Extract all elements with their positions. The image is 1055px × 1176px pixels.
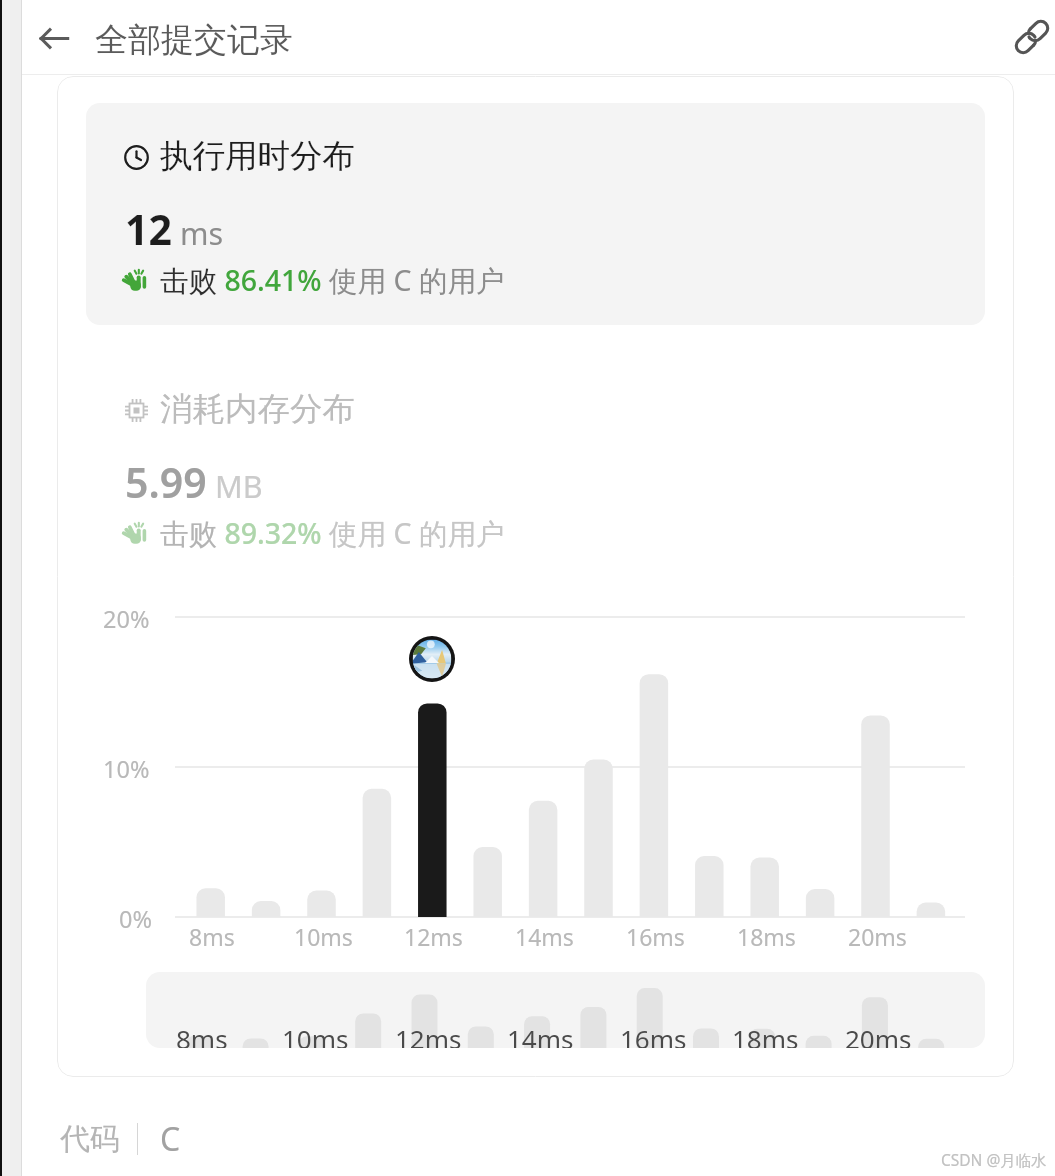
staticText: CSDN @月临水	[941, 1149, 1047, 1170]
button[interactable]: 消耗内存分布	[86, 371, 985, 566]
staticText: 0%	[119, 903, 152, 935]
staticText: 全部提交记录	[95, 19, 293, 61]
staticText: 消耗内存分布	[160, 389, 355, 430]
staticText: 10ms	[282, 1021, 349, 1048]
staticText: 代码	[60, 1120, 120, 1158]
staticText: 18ms	[732, 1021, 799, 1048]
button[interactable]: Copy link	[1008, 13, 1055, 61]
button[interactable]: 执行用时分布	[86, 103, 985, 325]
staticText: 5.99	[125, 454, 207, 510]
staticText: 20ms	[845, 1021, 912, 1048]
staticText: 8ms	[176, 1021, 228, 1048]
staticText: MB	[215, 465, 263, 507]
button[interactable]: Back	[30, 13, 78, 61]
staticText: 14ms	[515, 921, 574, 952]
staticText: 12ms	[395, 1021, 462, 1048]
staticText: 10%	[103, 753, 150, 785]
staticText: 击败 89.32% 使用 C 的用户	[160, 514, 505, 553]
staticText: ms	[180, 212, 224, 254]
button[interactable]: 代码	[60, 1117, 181, 1161]
staticText: 16ms	[626, 921, 685, 952]
staticText: C	[160, 1117, 181, 1161]
staticText: 16ms	[620, 1021, 687, 1048]
staticText: 12	[125, 201, 172, 257]
staticText: 击败 86.41% 使用 C 的用户	[160, 261, 505, 300]
staticText: 14ms	[507, 1021, 574, 1048]
staticText: 20ms	[848, 921, 907, 952]
staticText: 12ms	[404, 921, 463, 952]
staticText: 8ms	[189, 921, 235, 952]
button[interactable]: 8ms	[146, 972, 985, 1048]
staticText: 执行用时分布	[160, 136, 355, 177]
staticText: 20%	[103, 603, 150, 635]
staticText: 10ms	[294, 921, 353, 952]
button[interactable]: Your submission	[409, 636, 455, 682]
staticText: 18ms	[737, 921, 796, 952]
